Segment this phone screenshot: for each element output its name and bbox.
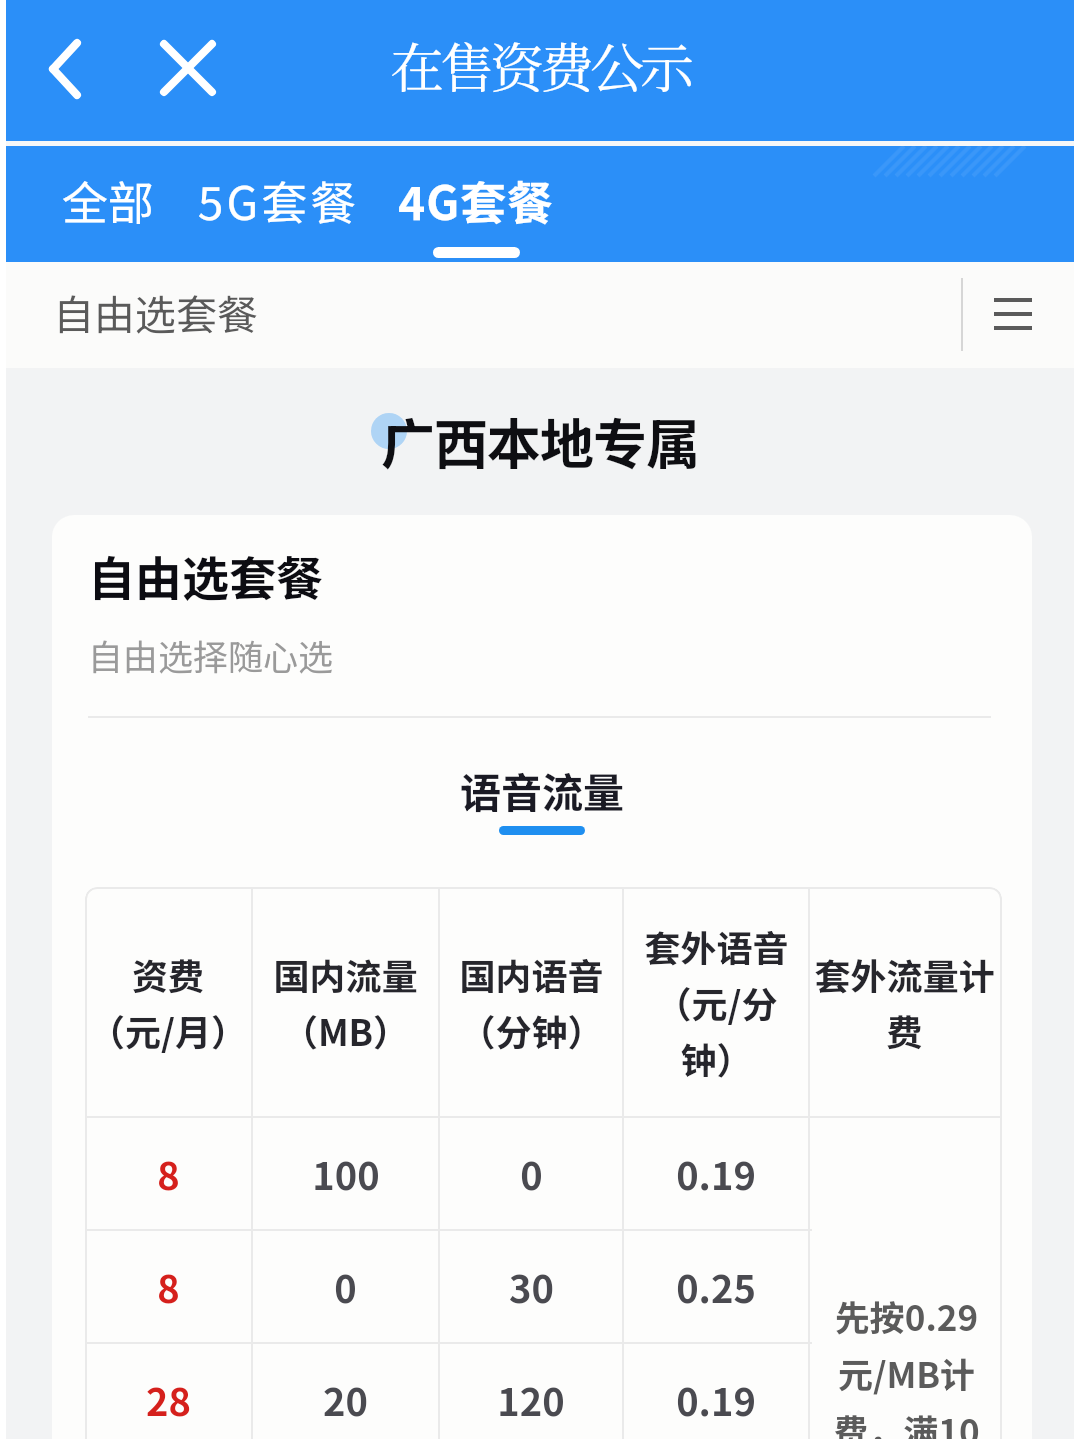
- button[interactable]: 5G套餐: [188, 146, 370, 262]
- staticText: 广西本地专属: [381, 401, 699, 479]
- staticText: 国内流量 （MB）: [273, 948, 418, 1056]
- staticText: 5G套餐: [198, 167, 360, 234]
- staticText: 120: [497, 1372, 565, 1427]
- button[interactable]: 自由选套餐: [52, 515, 1032, 1439]
- staticText: 资费 （元/月）: [89, 948, 247, 1056]
- staticText: 在售资费公示: [390, 26, 690, 104]
- staticText: 套外流量计 费: [814, 948, 995, 1056]
- staticText: 国内语音 （分钟）: [459, 948, 604, 1056]
- staticText: 自由选套餐: [88, 541, 323, 609]
- staticText: 0.19: [676, 1146, 756, 1201]
- button[interactable]: 自由选套餐: [6, 262, 326, 368]
- staticText: 30: [509, 1259, 554, 1314]
- button[interactable]: 语音流量: [452, 760, 632, 835]
- button[interactable]: 全部: [52, 146, 164, 262]
- staticText: 0: [334, 1259, 357, 1314]
- staticText: 8: [157, 1259, 180, 1314]
- staticText: 4G套餐: [398, 167, 555, 234]
- staticText: 0.19: [676, 1372, 756, 1427]
- button[interactable]: 4G套餐: [388, 146, 565, 262]
- staticText: 语音流量: [460, 760, 624, 819]
- staticText: 套外语音 （元/分 钟）: [644, 920, 789, 1084]
- staticText: 自由选套餐: [53, 282, 258, 341]
- staticText: 100: [312, 1146, 380, 1201]
- staticText: 20: [323, 1372, 368, 1427]
- staticText: 28: [146, 1372, 191, 1427]
- staticText: 0.25: [676, 1259, 756, 1314]
- staticText: 8: [157, 1146, 180, 1201]
- button[interactable]: Back: [14, 17, 114, 121]
- staticText: 0: [520, 1146, 543, 1201]
- staticText: 先按0.29 元/MB计 费，满10: [833, 1290, 980, 1439]
- button[interactable]: Close: [140, 20, 236, 116]
- staticText: 全部: [62, 167, 154, 234]
- button[interactable]: Menu: [978, 279, 1048, 349]
- staticText: 自由选择随心选: [88, 629, 334, 680]
